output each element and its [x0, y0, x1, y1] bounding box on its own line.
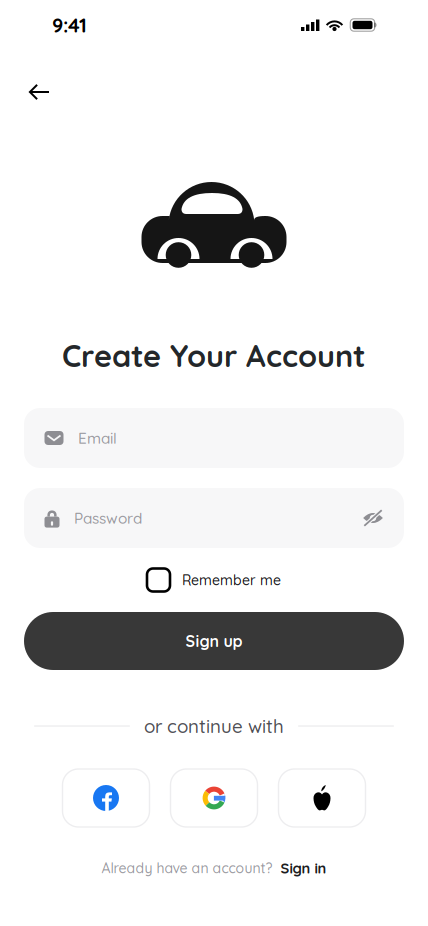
staticText: Already have an account?: [101, 859, 272, 877]
staticText: 9:41: [52, 12, 87, 37]
button[interactable]: Sign up with Facebook: [62, 769, 149, 827]
staticText: Email: [78, 428, 117, 448]
staticText: Sign up: [185, 631, 242, 651]
staticText: Create Your Account: [62, 336, 366, 375]
button[interactable]: Show password: [362, 508, 384, 528]
staticText: Sign in: [280, 859, 326, 877]
staticText: or continue with: [144, 714, 284, 738]
button[interactable]: Sign up with Google: [170, 769, 257, 827]
button[interactable]: Sign up with Apple: [278, 769, 365, 827]
button[interactable]: Sign up: [24, 612, 404, 670]
staticText: Password: [74, 508, 142, 528]
button[interactable]: Already have an account?: [101, 855, 326, 881]
staticText: Remember me: [182, 571, 281, 589]
button[interactable]: Back: [17, 70, 61, 114]
button[interactable]: Remember me: [147, 560, 281, 600]
